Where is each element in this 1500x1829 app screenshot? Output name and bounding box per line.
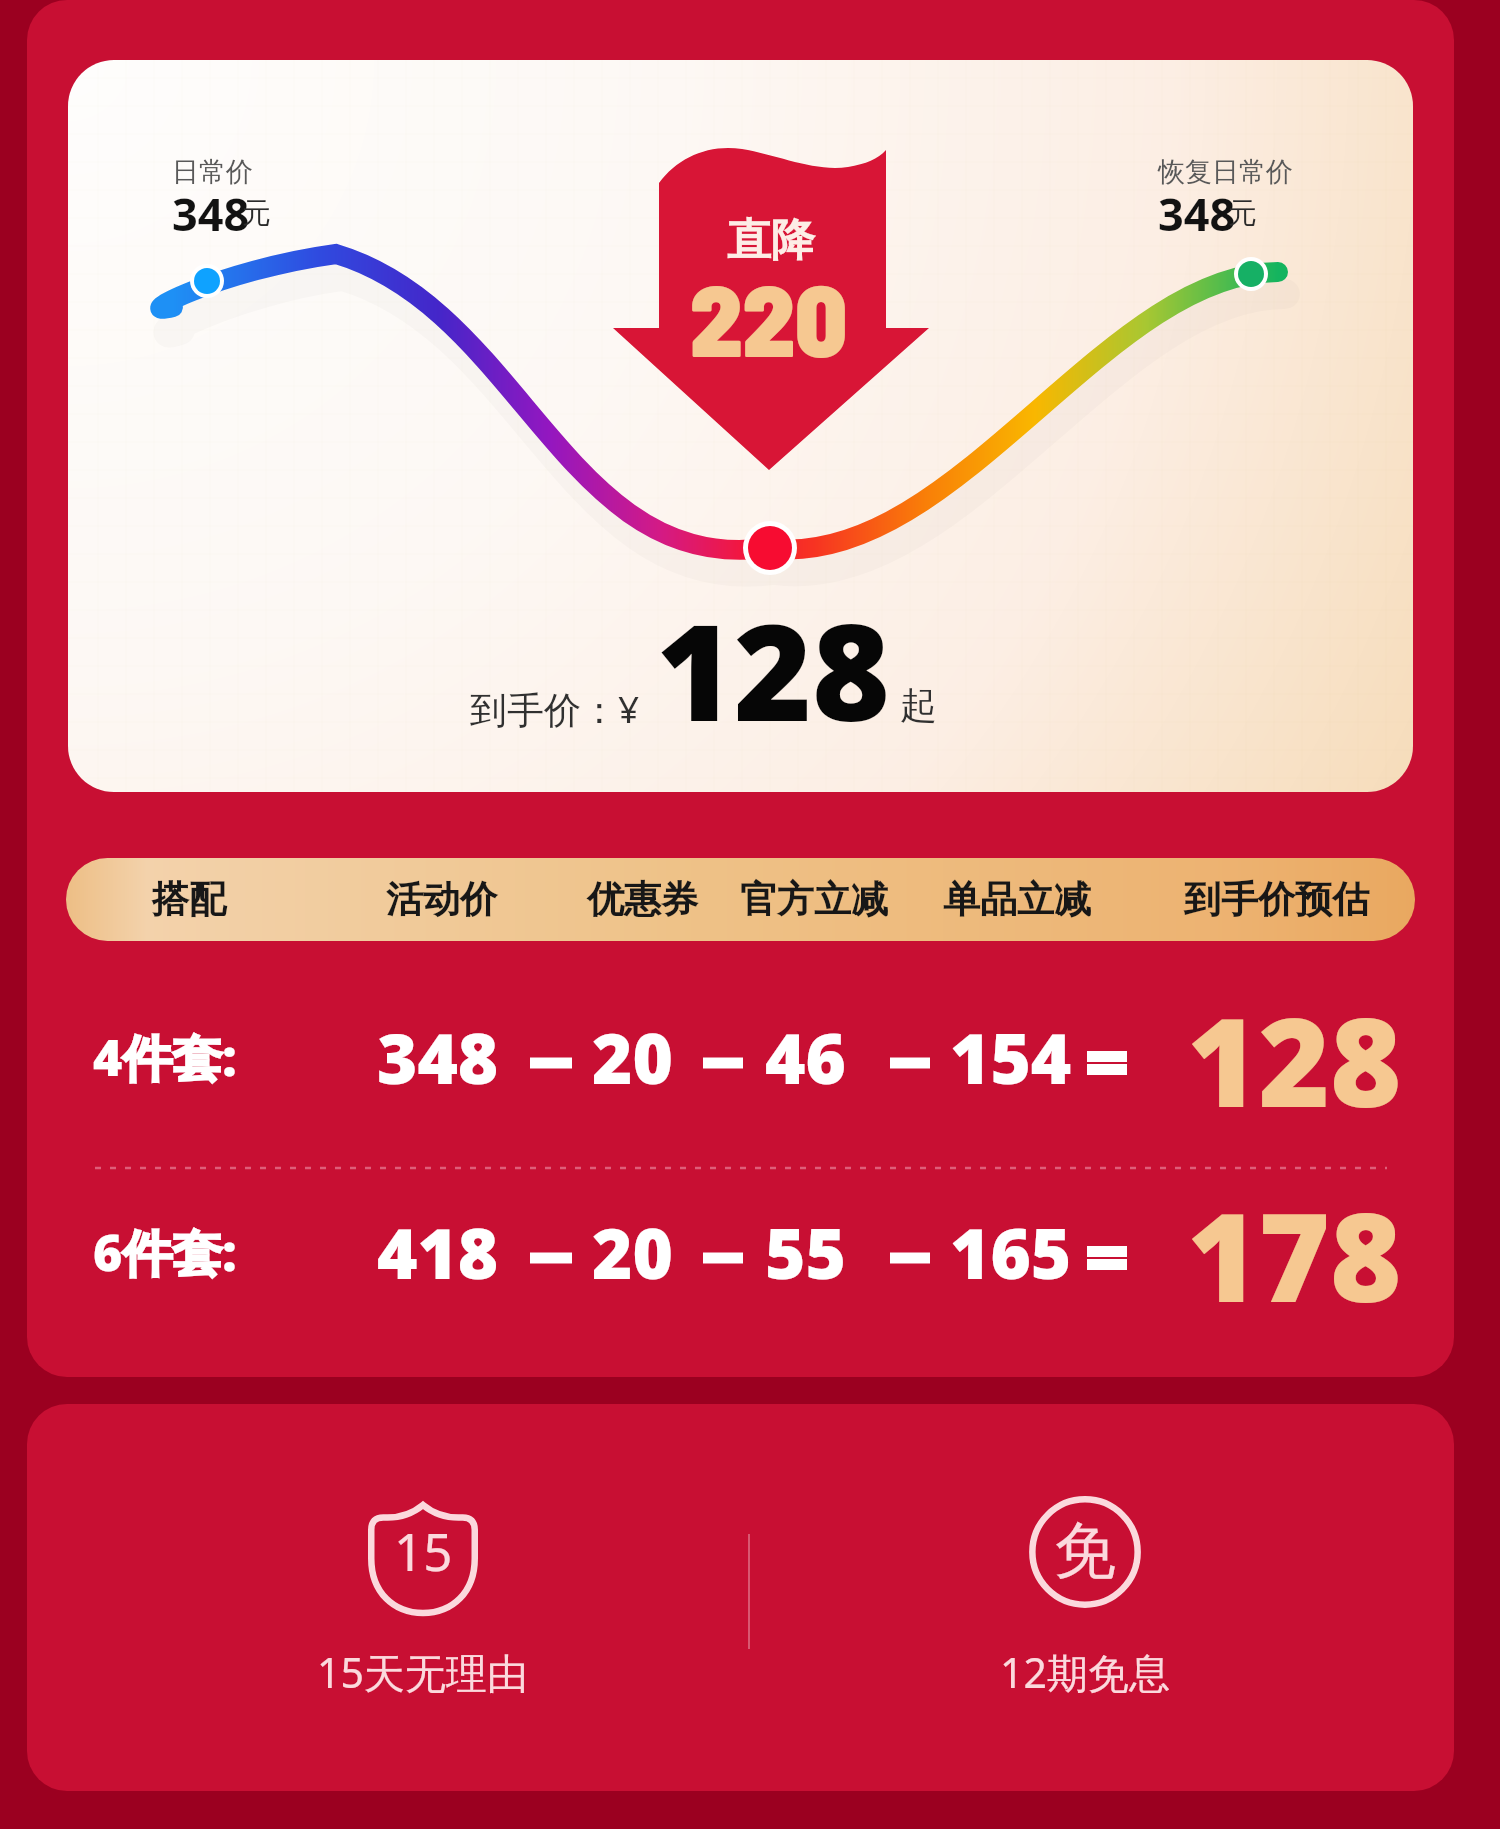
staticText: 直降 [727,213,815,268]
staticText: 55 [765,1205,846,1299]
staticText: 15天无理由 [317,1644,528,1700]
staticText: 活动价 [386,876,497,923]
staticText: 优惠券 [587,876,698,923]
staticText: 15 [394,1516,453,1585]
staticText: 20 [592,1205,673,1299]
staticText: 12期免息 [1000,1644,1170,1700]
staticText: 348 [172,183,250,244]
staticText: 搭配 [152,876,226,923]
staticText: 恢复日常价 [1158,155,1293,189]
staticText: 348 [377,1010,499,1104]
staticText: 6件套: [93,1218,237,1286]
staticText: 4件套: [93,1023,237,1091]
staticText: 154 [950,1010,1072,1104]
staticText: 128 [1187,977,1402,1143]
button[interactable]: 搭配 [66,858,1415,941]
staticText: 到手价：¥ [470,683,640,734]
staticText: 官方立减 [740,876,888,923]
staticText: 元 [242,195,271,232]
staticText: 128 [656,579,890,760]
staticText: 到手价预估 [1184,876,1369,923]
button[interactable]: 4件套: [27,970,1454,1170]
button[interactable]: 15 day no-reason returns [262,1494,582,1744]
staticText: 46 [765,1010,846,1104]
staticText: 348 [1158,183,1236,244]
staticText: 20 [592,1010,673,1104]
staticText: 元 [1228,195,1257,232]
staticText: 单品立减 [943,876,1091,923]
staticText: 起 [900,682,937,729]
button[interactable]: 6件套: [27,1165,1454,1365]
staticText: 220 [690,256,848,377]
staticText: 日常价 [172,155,253,189]
button[interactable]: 12 interest free installments [925,1494,1245,1744]
staticText: 418 [377,1205,499,1299]
staticText: 免 [1054,1512,1116,1590]
staticText: 165 [950,1205,1072,1299]
staticText: 178 [1187,1172,1402,1338]
